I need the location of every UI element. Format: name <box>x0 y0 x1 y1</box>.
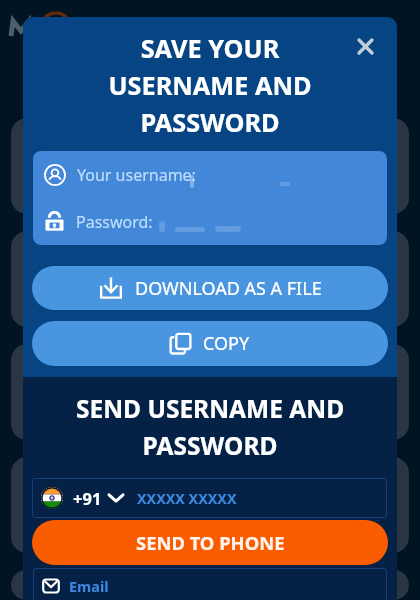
button[interactable]: COPY <box>32 321 388 366</box>
staticText: COPY <box>203 331 250 356</box>
button[interactable]: DOWNLOAD AS A FILE <box>32 266 388 310</box>
staticText: SEND USERNAME AND PASSWORD <box>23 392 397 462</box>
staticText: XXXXX XXXXX <box>137 489 237 508</box>
button[interactable]: Close dialog <box>349 30 381 62</box>
button[interactable]: Email <box>33 568 387 600</box>
staticText: SEND TO PHONE <box>136 530 285 555</box>
staticText: Your username: <box>77 164 196 186</box>
button[interactable]: +91 <box>32 478 387 518</box>
staticText: DOWNLOAD AS A FILE <box>135 276 322 301</box>
staticText: Password: <box>76 211 157 233</box>
staticText: Email <box>69 576 109 596</box>
button[interactable]: SEND TO PHONE <box>32 520 388 565</box>
staticText: +91 <box>73 487 102 509</box>
staticText: SAVE YOUR USERNAME AND PASSWORD <box>23 31 397 139</box>
